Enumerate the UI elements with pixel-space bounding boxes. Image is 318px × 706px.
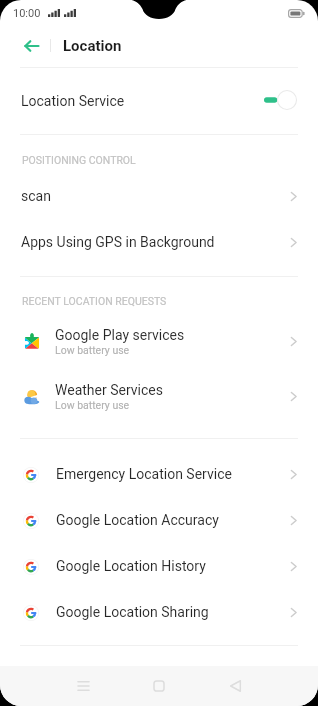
staticText: Location: [63, 37, 122, 55]
button[interactable]: Recent apps: [57, 666, 109, 706]
staticText: Google Location Sharing: [56, 604, 209, 620]
staticText: Apps Using GPS in Background: [21, 234, 215, 250]
button[interactable]: Weather Services: [0, 369, 318, 424]
button[interactable]: Apps Using GPS in Background: [0, 219, 318, 265]
button[interactable]: Location Service: [0, 68, 318, 134]
staticText: Google Play services: [55, 327, 185, 343]
staticText: Emergency Location Service: [56, 466, 232, 482]
staticText: Google Location Accuracy: [56, 512, 219, 528]
button[interactable]: Back: [209, 666, 261, 706]
button[interactable]: Emergency Location Service: [0, 451, 318, 497]
button[interactable]: Google Location History: [0, 543, 318, 589]
staticText: Low battery use: [55, 344, 130, 356]
staticText: Weather Services: [55, 382, 163, 398]
staticText: Google Location History: [56, 558, 206, 574]
staticText: RECENT LOCATION REQUESTS: [22, 295, 167, 307]
button[interactable]: Google Location Accuracy: [0, 497, 318, 543]
staticText: scan: [21, 188, 51, 204]
button[interactable]: Google Play services: [0, 314, 318, 369]
button[interactable]: Google Location Sharing: [0, 589, 318, 635]
button[interactable]: Home: [133, 666, 185, 706]
button[interactable]: scan: [0, 173, 318, 219]
staticText: 10:00: [13, 7, 41, 20]
staticText: Low battery use: [55, 399, 130, 411]
staticText: Location Service: [21, 93, 125, 109]
button[interactable]: Back: [0, 26, 48, 67]
staticText: POSITIONING CONTROL: [22, 154, 136, 166]
